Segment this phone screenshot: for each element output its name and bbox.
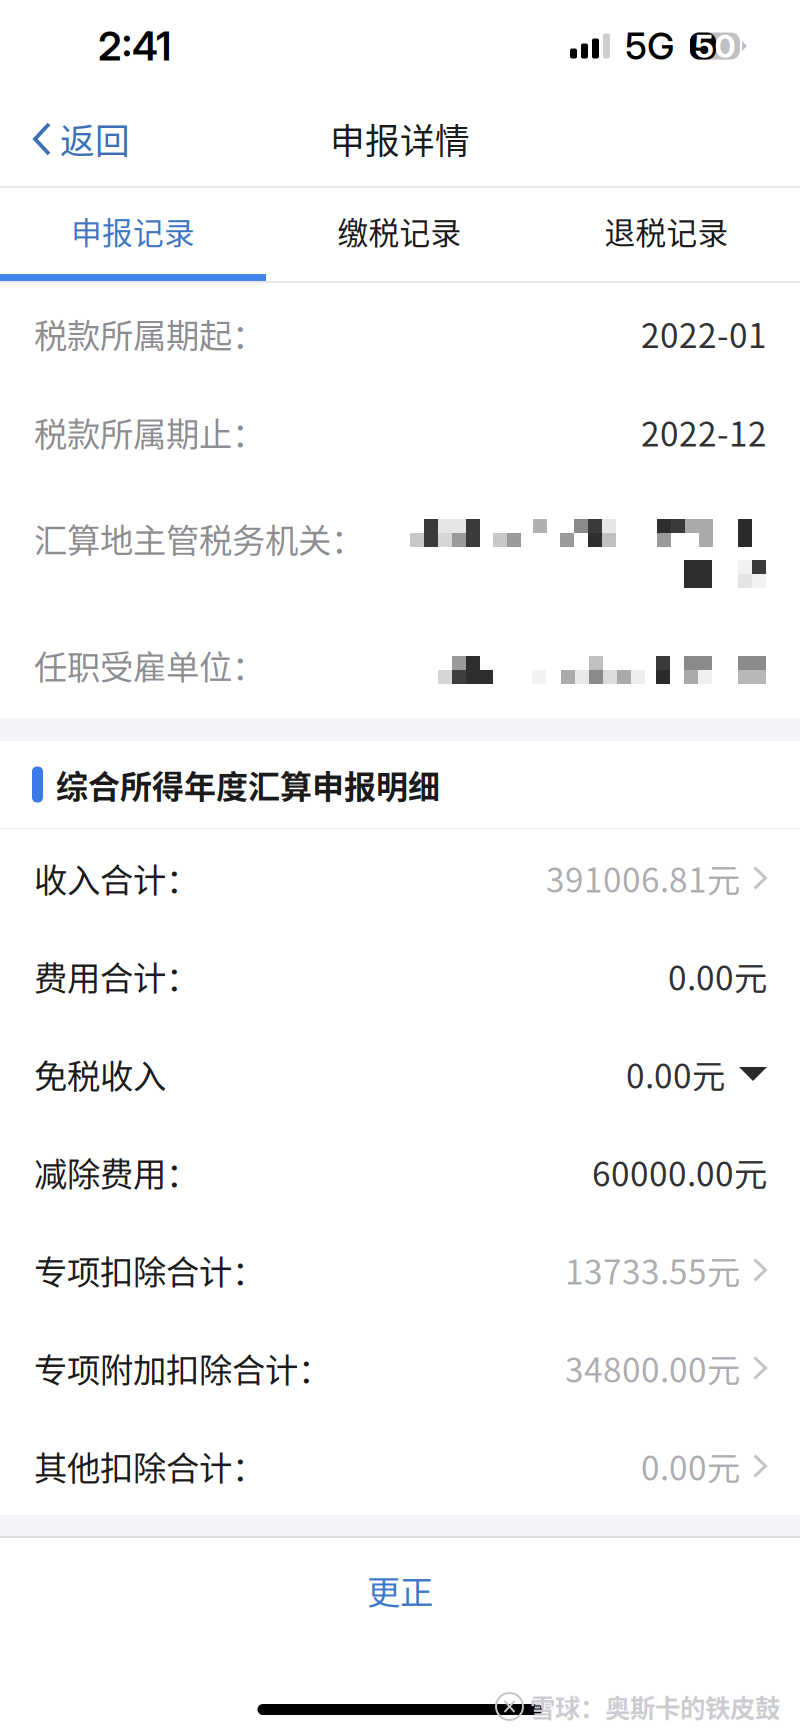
staticText: 50 <box>694 27 735 65</box>
button[interactable]: 收入合计： <box>0 829 800 927</box>
button[interactable]: 申报记录 <box>0 188 266 274</box>
staticText: 2022-01 <box>641 309 767 358</box>
staticText: 税款所属期止： <box>34 408 265 456</box>
staticText: 减除费用： <box>34 1148 199 1196</box>
staticText: 综合所得年度汇算申报明细 <box>56 761 440 808</box>
staticText: 汇算地主管税务机关： <box>34 514 364 562</box>
staticText: 返回 <box>60 114 130 164</box>
staticText: 申报记录 <box>71 209 195 253</box>
staticText: 申报详情 <box>330 114 470 164</box>
button[interactable]: 专项附加扣除合计： <box>0 1319 800 1417</box>
staticText: 免税收入 <box>34 1050 166 1098</box>
button[interactable]: 缴税记录 <box>266 188 533 274</box>
staticText: 收入合计： <box>34 854 199 902</box>
staticText: 0.00元 <box>641 1442 740 1490</box>
staticText: 退税记录 <box>604 209 728 253</box>
staticText: 34800.00元 <box>565 1344 740 1392</box>
staticText: 5G <box>625 23 674 69</box>
staticText: 2022-12 <box>641 408 767 456</box>
staticText: 13733.55元 <box>565 1246 740 1294</box>
button[interactable]: 其他扣除合计： <box>0 1417 800 1515</box>
button[interactable]: 更正 <box>0 1538 800 1642</box>
button[interactable]: 减除费用： <box>0 1123 800 1221</box>
staticText: 费用合计： <box>34 952 199 1000</box>
staticText: 税款所属期起： <box>34 309 265 358</box>
staticText: 缴税记录 <box>337 209 461 253</box>
button[interactable]: 退税记录 <box>533 188 800 274</box>
staticText: 任职受雇单位： <box>34 641 265 689</box>
button[interactable]: 免税收入 <box>0 1025 800 1123</box>
button[interactable]: 返回 <box>0 92 220 186</box>
button[interactable]: 费用合计： <box>0 927 800 1025</box>
staticText: 2:41 <box>98 22 171 70</box>
staticText: 0.00元 <box>626 1050 725 1098</box>
staticText: 专项附加扣除合计： <box>34 1344 331 1392</box>
staticText: 雪球：奥斯卡的铁皮鼓 <box>530 1688 780 1725</box>
staticText: 0.00元 <box>668 952 767 1000</box>
staticText: 其他扣除合计： <box>34 1442 265 1490</box>
staticText: 专项扣除合计： <box>34 1246 265 1294</box>
staticText: 391006.81元 <box>546 854 740 902</box>
staticText: 60000.00元 <box>592 1148 767 1196</box>
staticText: 更正 <box>367 1566 433 1614</box>
button[interactable]: 专项扣除合计： <box>0 1221 800 1319</box>
